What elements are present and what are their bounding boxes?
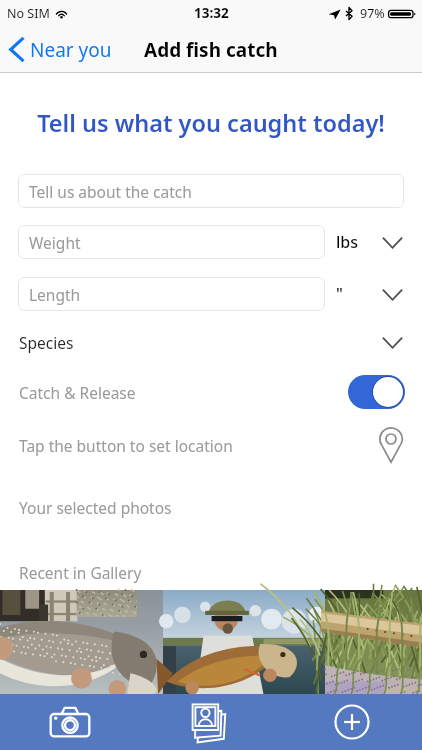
- staticText: 97%: [360, 5, 385, 22]
- button[interactable]: Choose Weight unit: [382, 230, 403, 254]
- staticText: Length: [29, 284, 81, 305]
- button[interactable]: Near you: [9, 26, 414, 73]
- staticText: 13:32: [194, 4, 229, 22]
- button[interactable]: Weight: [18, 225, 325, 259]
- staticText: Near you: [30, 37, 112, 63]
- button[interactable]: Length: [18, 277, 325, 311]
- button[interactable]: [0, 590, 163, 694]
- staticText: Your selected photos: [19, 497, 172, 518]
- staticText: ": [336, 283, 343, 305]
- staticText: Species: [19, 332, 74, 353]
- staticText: Tell us about the catch: [29, 181, 192, 202]
- button[interactable]: [163, 590, 325, 694]
- staticText: No SIM: [7, 5, 50, 22]
- button[interactable]: Tell us about the catch: [18, 174, 404, 208]
- staticText: lbs: [336, 231, 359, 253]
- button[interactable]: Add catch: [281, 694, 422, 750]
- button[interactable]: Take a photo: [0, 694, 140, 750]
- button[interactable]: Catch & Release: [19, 375, 405, 409]
- button[interactable]: Set location: [379, 427, 403, 463]
- staticText: Tap the button to set location: [19, 435, 233, 456]
- staticText: Catch & Release: [19, 382, 136, 403]
- button[interactable]: Species: [19, 324, 422, 360]
- staticText: Recent in Gallery: [19, 562, 142, 583]
- button[interactable]: [325, 590, 422, 694]
- button[interactable]: Choose Length unit: [382, 282, 403, 306]
- staticText: Add fish catch: [144, 37, 278, 63]
- staticText: Weight: [29, 232, 81, 253]
- button[interactable]: Open photo gallery: [140, 694, 281, 750]
- staticText: Tell us what you caught today!: [0, 107, 422, 139]
